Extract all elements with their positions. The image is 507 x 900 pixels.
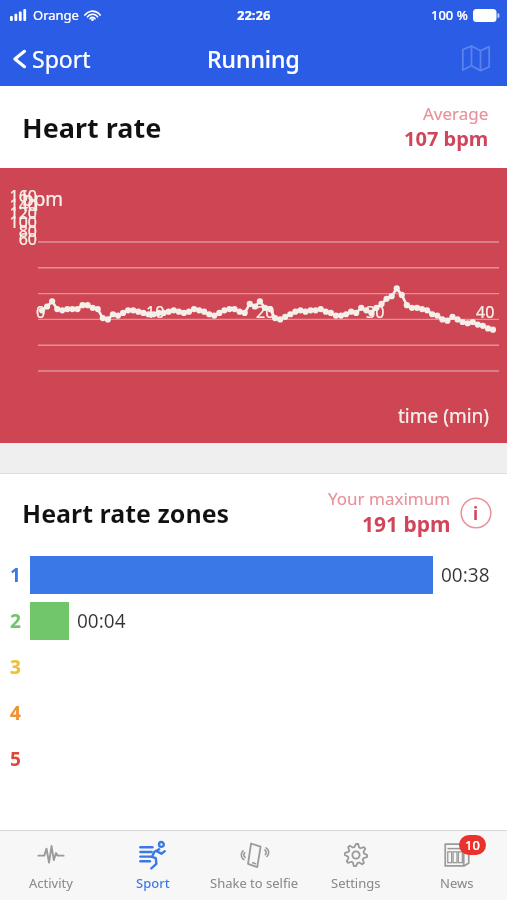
button[interactable]: 10	[406, 831, 507, 900]
staticText: 2	[10, 608, 21, 634]
staticText: Average	[423, 102, 489, 125]
staticText: 40	[476, 301, 495, 323]
staticText: 191 bpm	[362, 510, 451, 539]
staticText: 3	[10, 654, 21, 680]
button[interactable]: 4	[0, 690, 507, 736]
staticText: 30	[366, 301, 385, 323]
staticText: Activity	[29, 874, 73, 892]
staticText: Heart rate zones	[22, 496, 230, 530]
staticText: Sport	[32, 43, 91, 74]
staticText: 4	[10, 700, 21, 726]
button[interactable]: 5	[0, 736, 507, 782]
button[interactable]: Settings	[305, 831, 406, 900]
staticText: time (min)	[398, 403, 489, 429]
staticText: Heart rate	[22, 109, 162, 146]
button[interactable]: 3	[0, 644, 507, 690]
staticText: 10	[465, 836, 480, 854]
staticText: 100	[5, 211, 37, 233]
button[interactable]: Sport	[102, 831, 204, 900]
staticText: 0	[36, 301, 46, 323]
staticText: Shake to selfie	[210, 874, 299, 892]
staticText: 160	[5, 185, 37, 207]
staticText: Your maximum	[328, 487, 451, 510]
staticText: Running	[207, 43, 300, 74]
staticText: 1	[10, 562, 21, 588]
staticText: 5	[10, 746, 21, 772]
staticText: 20	[256, 301, 275, 323]
staticText: 60	[5, 228, 37, 250]
staticText: 00:38	[441, 562, 490, 588]
staticText: 00:04	[77, 608, 126, 634]
staticText: 100 %	[431, 6, 468, 24]
button[interactable]: Map	[445, 33, 507, 83]
staticText: 107 bpm	[404, 125, 489, 152]
staticText: 22:26	[237, 6, 271, 24]
button[interactable]: Info	[459, 496, 493, 530]
staticText: 120	[5, 202, 37, 224]
staticText: Sport	[136, 874, 170, 892]
button[interactable]: Sport	[0, 37, 103, 80]
button[interactable]: Shake to selfie	[204, 831, 305, 900]
button[interactable]: 2	[0, 598, 507, 644]
staticText: 140	[5, 194, 37, 216]
staticText: i	[473, 502, 479, 525]
staticText: Settings	[331, 874, 381, 892]
staticText: 10	[146, 301, 165, 323]
button[interactable]: 1	[0, 552, 507, 598]
staticText: Orange	[33, 6, 79, 24]
staticText: News	[440, 874, 474, 892]
staticText: 80	[5, 220, 37, 242]
button[interactable]: Activity	[0, 831, 102, 900]
staticText: bpm	[22, 186, 64, 212]
